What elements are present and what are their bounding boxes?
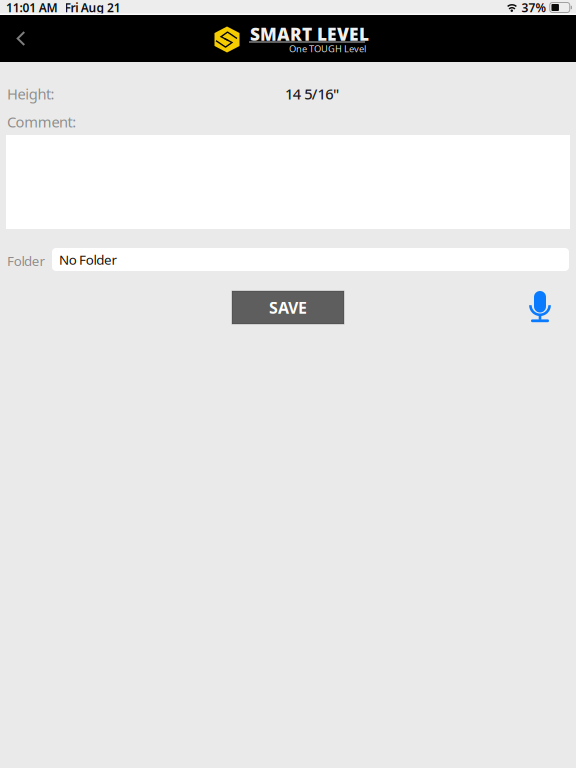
staticText: SMART LEVEL: [250, 22, 369, 45]
staticText: 11:01 AM: [6, 0, 58, 15]
button[interactable]: Voice input: [529, 288, 551, 319]
staticText: 37%: [521, 0, 546, 15]
staticText: 14 5/16": [285, 84, 339, 103]
staticText: Height:: [7, 84, 55, 103]
staticText: Comment:: [7, 112, 76, 131]
staticText: SAVE: [269, 297, 307, 318]
staticText: One TOUGH Level: [289, 42, 366, 55]
button[interactable]: No Folder: [52, 248, 569, 271]
staticText: No Folder: [59, 251, 118, 268]
button[interactable]: Back: [0, 15, 42, 61]
staticText: Folder: [7, 252, 45, 270]
staticText: Fri Aug 21: [65, 0, 121, 15]
button[interactable]: SAVE: [232, 291, 344, 324]
